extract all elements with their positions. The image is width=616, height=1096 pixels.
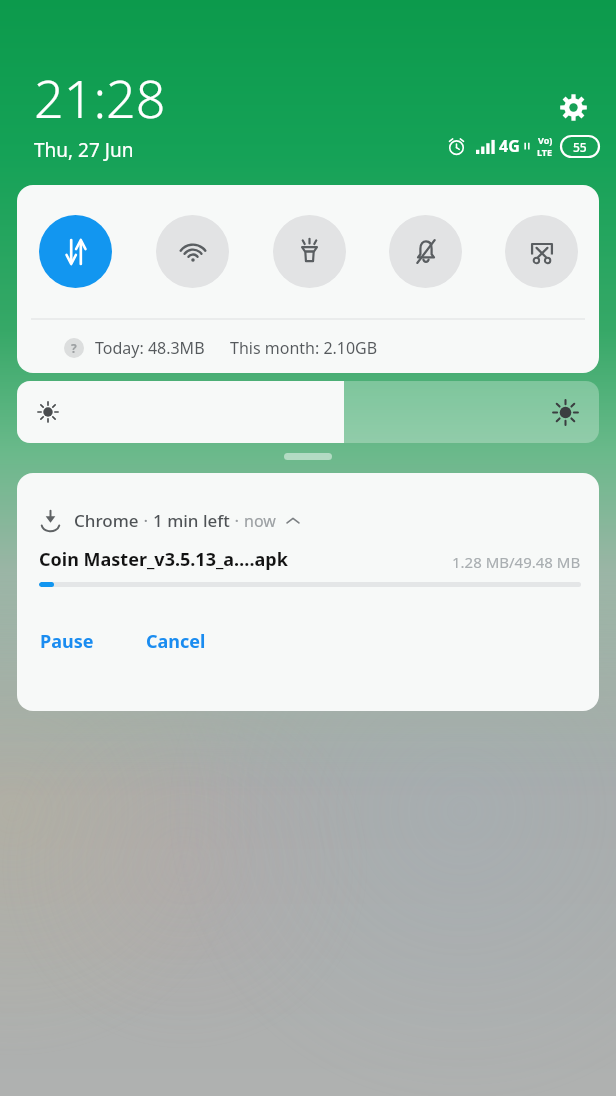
- staticText: Thu, 27 Jun: [34, 137, 134, 163]
- button[interactable]: Wi-Fi: [156, 215, 229, 288]
- button[interactable]: Brightness: [17, 381, 599, 443]
- staticText: 21:28: [34, 62, 166, 133]
- staticText: Chrome: [74, 509, 139, 532]
- button[interactable]: Silent mode: [389, 215, 462, 288]
- button[interactable]: ?: [17, 323, 599, 373]
- staticText: 55: [573, 139, 587, 155]
- button[interactable]: Screenshot: [505, 215, 578, 288]
- button[interactable]: Chrome: [17, 473, 599, 711]
- staticText: Coin Master_v3.5.13_a….apk: [39, 547, 288, 572]
- staticText: 4G: [499, 135, 520, 157]
- staticText: ·: [230, 509, 244, 532]
- staticText: ?: [71, 340, 77, 356]
- staticText: Today: 48.3MB: [95, 337, 205, 359]
- staticText: Vo): [538, 134, 553, 146]
- button[interactable]: Flashlight: [273, 215, 346, 288]
- button[interactable]: Settings: [552, 86, 594, 128]
- button[interactable]: Mobile data: [39, 215, 112, 288]
- button[interactable]: Pause: [37, 621, 97, 662]
- button[interactable]: Cancel: [143, 621, 209, 662]
- staticText: now: [244, 510, 276, 532]
- staticText: ·: [139, 509, 153, 532]
- staticText: 1.28 MB/49.48 MB: [452, 552, 581, 572]
- staticText: This month: 2.10GB: [230, 337, 378, 359]
- staticText: 1 min left: [153, 509, 230, 532]
- staticText: Cancel: [146, 629, 206, 654]
- staticText: Pause: [40, 629, 94, 654]
- staticText: LTE: [537, 146, 553, 158]
